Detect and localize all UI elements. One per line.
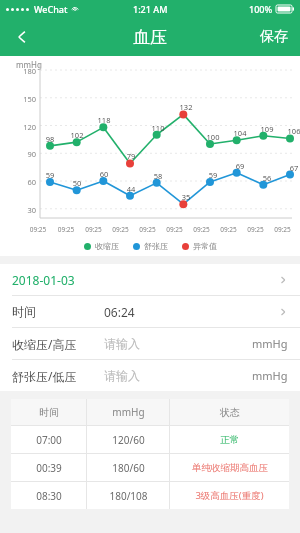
staticText: 09:25 xyxy=(161,225,188,234)
staticText: 104 xyxy=(231,128,249,138)
staticText: 59 xyxy=(41,170,59,180)
button[interactable]: 保存 xyxy=(248,18,300,56)
staticText: 90 xyxy=(14,149,36,159)
staticText: 79 xyxy=(122,151,140,161)
staticText: 09:25 xyxy=(188,225,215,234)
staticText: 120 xyxy=(14,122,36,132)
button[interactable]: 收缩压/高压 xyxy=(0,328,300,359)
staticText: mmHg xyxy=(112,405,145,419)
staticText: 120/60 xyxy=(112,433,145,447)
staticText: 收缩压 xyxy=(95,241,119,251)
staticText: 2018-01-03 xyxy=(12,272,104,288)
staticText: 98 xyxy=(41,134,59,144)
button[interactable]: 07:00 xyxy=(11,426,289,453)
staticText: 09:25 xyxy=(134,225,161,234)
staticText: 09:25 xyxy=(269,225,296,234)
staticText: 58 xyxy=(149,171,167,181)
staticText: 正常 xyxy=(220,434,239,446)
staticText: 67 xyxy=(285,163,300,173)
staticText: 150 xyxy=(14,94,36,104)
staticText: 时间 xyxy=(12,304,104,319)
staticText: 舒张压 xyxy=(144,241,168,251)
staticText: 保存 xyxy=(260,28,288,46)
staticText: 180/108 xyxy=(109,489,148,503)
staticText: 35 xyxy=(177,192,195,202)
staticText: 异常值 xyxy=(193,241,217,251)
staticText: 状态 xyxy=(220,406,240,419)
staticText: mmHg xyxy=(16,59,42,70)
staticText: 59 xyxy=(204,170,222,180)
staticText: 180/60 xyxy=(112,461,145,475)
staticText: 44 xyxy=(122,184,140,194)
staticText: mmHg xyxy=(252,368,288,383)
staticText: 50 xyxy=(68,178,86,188)
button[interactable]: 时间 xyxy=(0,296,300,327)
staticText: 60 xyxy=(95,169,113,179)
staticText: 3级高血压(重度) xyxy=(195,489,264,502)
staticText: 收缩压/高压 xyxy=(12,336,104,352)
staticText: 102 xyxy=(68,130,86,140)
staticText: 单纯收缩期高血压 xyxy=(192,462,268,474)
staticText: 血压 xyxy=(133,27,167,48)
staticText: 1:21 AM xyxy=(133,3,168,15)
staticText: 109 xyxy=(258,124,276,134)
staticText: 09:25 xyxy=(242,225,269,234)
staticText: 09:25 xyxy=(215,225,242,234)
staticText: 132 xyxy=(177,102,195,112)
staticText: 56 xyxy=(258,173,276,183)
staticText: 09:25 xyxy=(52,225,80,234)
staticText: 时间 xyxy=(39,406,59,419)
staticText: 69 xyxy=(231,161,249,171)
button[interactable]: 08:30 xyxy=(11,482,289,509)
button[interactable]: 2018-01-03 xyxy=(0,264,300,295)
staticText: 09:25 xyxy=(80,225,107,234)
staticText: 30 xyxy=(14,205,36,215)
staticText: 07:00 xyxy=(36,433,62,447)
staticText: 110 xyxy=(149,123,167,133)
button[interactable]: Back xyxy=(0,18,44,56)
staticText: mmHg xyxy=(252,336,288,351)
staticText: 09:25 xyxy=(24,225,52,234)
staticText: 100 xyxy=(204,132,222,142)
button[interactable]: 00:39 xyxy=(11,454,289,481)
staticText: 请输入 xyxy=(104,368,252,383)
staticText: 06:24 xyxy=(104,304,278,320)
staticText: 60 xyxy=(14,177,36,187)
staticText: 118 xyxy=(95,115,113,125)
staticText: 08:30 xyxy=(36,489,62,503)
staticText: 180 xyxy=(14,66,36,76)
staticText: 09:25 xyxy=(107,225,134,234)
button[interactable]: 舒张压/低压 xyxy=(0,360,300,391)
staticText: WeChat xyxy=(34,3,68,15)
staticText: 106 xyxy=(285,126,300,136)
staticText: 100% xyxy=(249,3,273,15)
staticText: 00:39 xyxy=(36,461,62,475)
staticText: 舒张压/低压 xyxy=(12,368,104,384)
staticText: 请输入 xyxy=(104,336,252,351)
